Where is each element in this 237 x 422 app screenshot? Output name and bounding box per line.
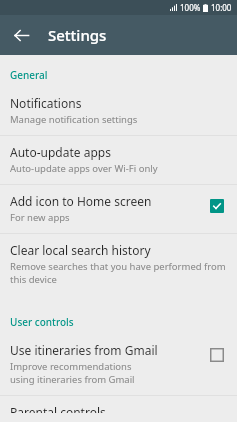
staticText: Notifications xyxy=(10,95,82,111)
button[interactable]: Add icon to Home screen xyxy=(0,185,237,233)
staticText: General xyxy=(10,68,48,82)
button[interactable]: Checked xyxy=(205,194,229,218)
button[interactable]: Back xyxy=(6,20,36,50)
button[interactable]: Parental controls xyxy=(0,396,237,422)
button[interactable]: Auto-update apps xyxy=(0,136,237,184)
staticText: Use itineraries from Gmail xyxy=(10,342,158,358)
button[interactable]: Clear local search history xyxy=(0,234,237,295)
staticText: User controls xyxy=(10,315,74,329)
staticText: 10:00 xyxy=(211,2,232,13)
staticText: For new apps xyxy=(10,211,199,224)
staticText: Auto-update apps over Wi-Fi only xyxy=(10,162,229,175)
staticText: Settings xyxy=(48,25,107,45)
staticText: Improve recommendations using itinerarie… xyxy=(10,360,157,386)
staticText: Clear local search history xyxy=(10,242,151,258)
staticText: Parental controls xyxy=(10,404,106,413)
button[interactable]: Use itineraries from Gmail xyxy=(0,334,237,395)
staticText: Add icon to Home screen xyxy=(10,193,152,209)
staticText: Manage notification settings xyxy=(10,113,229,126)
button[interactable]: Unchecked xyxy=(205,343,229,367)
staticText: 100% xyxy=(180,2,201,13)
button[interactable]: Notifications xyxy=(0,87,237,135)
staticText: Auto-update apps xyxy=(10,144,111,160)
staticText: Remove searches that you have performed … xyxy=(10,260,229,286)
